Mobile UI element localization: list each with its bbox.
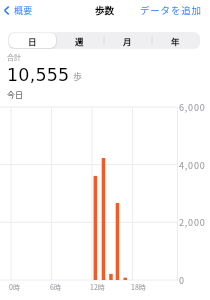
staticText: 週 [75,35,84,47]
staticText: 歩 [73,70,83,83]
button[interactable]: 年 [151,33,199,48]
staticText: 6,000 [179,101,206,114]
button[interactable]: 日 [9,33,56,48]
staticText: 日 [28,35,37,47]
staticText: 18時 [131,282,146,292]
button[interactable]: 概要 [0,2,39,19]
staticText: 合計 [7,52,21,62]
staticText: 12時 [90,282,105,292]
button[interactable]: データを追加 [135,1,210,19]
staticText: 年 [171,35,180,47]
staticText: 0時 [9,282,20,292]
button[interactable]: 月 [103,33,151,48]
staticText: 6時 [50,282,61,292]
staticText: 2,000 [179,216,206,229]
staticText: 概要 [14,4,33,17]
staticText: 月 [123,35,132,47]
staticText: 4,000 [179,159,206,172]
staticText: 0 [179,274,185,287]
button[interactable]: 週 [56,33,103,48]
staticText: 10,555 [7,65,70,85]
staticText: 歩数 [95,3,115,17]
staticText: 今日 [7,89,23,101]
staticText: データを追加 [140,3,202,17]
